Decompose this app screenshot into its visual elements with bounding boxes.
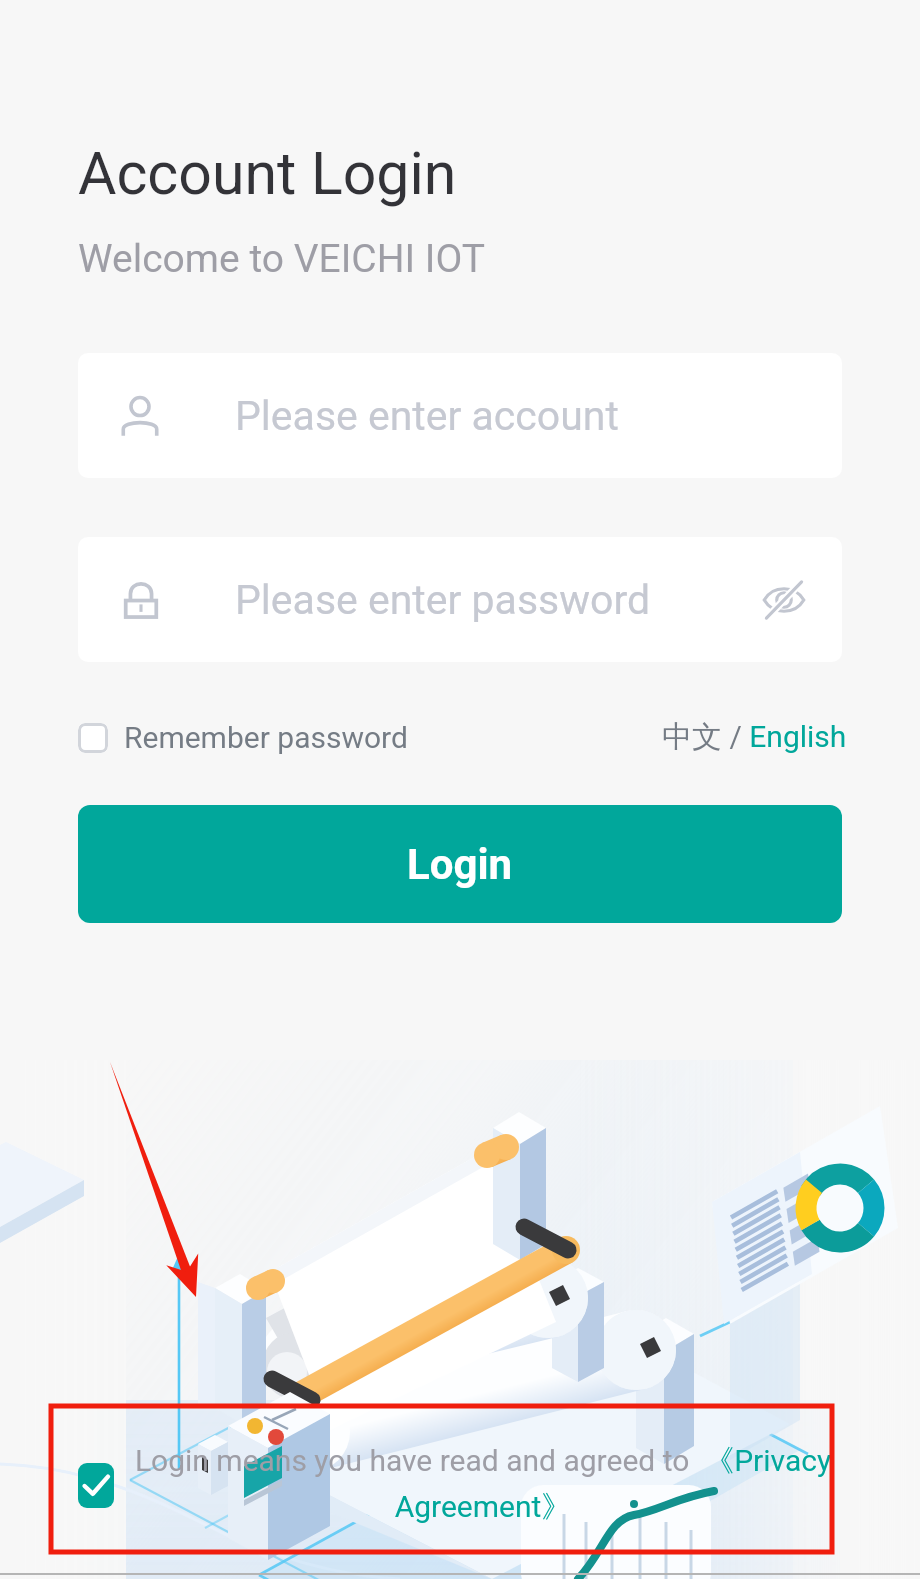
button[interactable]: Login xyxy=(78,805,842,923)
staticText: Account Login xyxy=(78,139,457,208)
button[interactable]: Please enter password xyxy=(78,537,842,662)
staticText: Login means you have read and agreed to … xyxy=(133,1442,833,1526)
button[interactable]: Remember password xyxy=(78,720,408,755)
staticText: Login xyxy=(407,840,513,889)
button[interactable]: Login means you have read and agreed to … xyxy=(133,1442,833,1526)
button[interactable]: 中文 / English xyxy=(662,718,847,756)
staticText: Please enter password xyxy=(235,576,651,624)
staticText: Please enter account xyxy=(235,392,619,440)
staticText: Remember password xyxy=(124,720,408,755)
button[interactable]: Show password xyxy=(748,564,820,636)
staticText: Welcome to VEICHI IOT xyxy=(78,236,485,282)
button[interactable]: Agree to Privacy Agreement xyxy=(78,1463,114,1508)
button[interactable]: Please enter account xyxy=(78,353,842,478)
